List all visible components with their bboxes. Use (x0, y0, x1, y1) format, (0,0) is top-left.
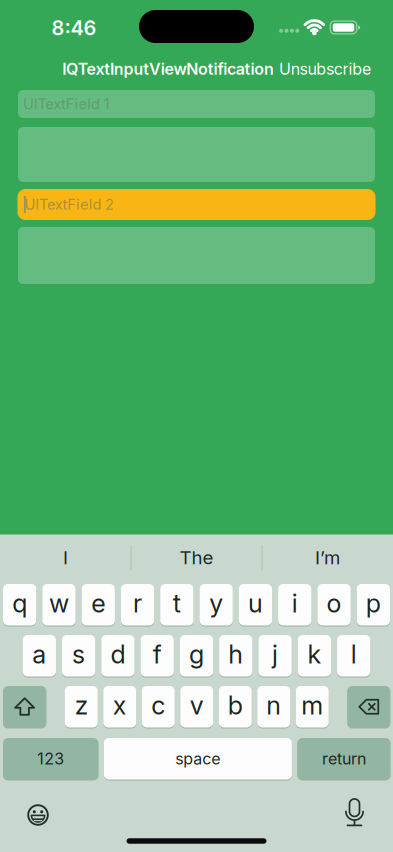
staticText: space (175, 749, 220, 768)
staticText: UITextField 1 (23, 95, 110, 113)
staticText: f (153, 639, 162, 669)
staticText: Unsubscribe (279, 60, 371, 78)
staticText: 123 (37, 749, 64, 768)
button[interactable]: n (257, 685, 290, 728)
button[interactable]: k (298, 634, 331, 677)
staticText: r (133, 588, 142, 618)
staticText: j (272, 639, 278, 669)
button[interactable]: 123 (3, 737, 98, 780)
button[interactable]: I’m (267, 537, 387, 577)
button[interactable]: p (357, 583, 390, 626)
button[interactable]: w (42, 583, 76, 626)
staticText: c (151, 690, 165, 720)
staticText: UITextField 2 (24, 196, 114, 213)
button[interactable]: g (180, 634, 213, 677)
button[interactable]: c (142, 685, 175, 728)
staticText: t (173, 588, 181, 618)
button[interactable]: Dictate (335, 794, 373, 832)
staticText: I’m (315, 546, 340, 568)
button[interactable]: v (180, 685, 213, 728)
button[interactable]: Delete (347, 685, 390, 728)
button[interactable]: UITextField 1 (18, 90, 375, 118)
button[interactable]: The (136, 537, 256, 577)
staticText: g (189, 639, 204, 669)
button[interactable]: q (3, 583, 36, 626)
button[interactable]: Emoji (19, 796, 57, 834)
staticText: IQTextInputViewNotification (62, 60, 274, 78)
staticText: z (75, 690, 88, 720)
staticText: k (307, 639, 321, 669)
button[interactable]: o (317, 583, 351, 626)
staticText: l (351, 639, 357, 669)
staticText: d (110, 639, 125, 669)
staticText: u (248, 588, 263, 618)
staticText: v (190, 690, 204, 720)
button[interactable]: s (62, 634, 95, 677)
staticText: n (266, 690, 281, 720)
button[interactable]: z (65, 685, 98, 728)
staticText: m (301, 690, 323, 720)
button[interactable]: e (82, 583, 115, 626)
button[interactable]: r (121, 583, 154, 626)
button[interactable]: u (239, 583, 272, 626)
staticText: x (113, 690, 127, 720)
button[interactable]: return (297, 737, 390, 780)
staticText: p (366, 588, 381, 618)
button[interactable]: i (278, 583, 311, 626)
button[interactable]: x (103, 685, 136, 728)
button[interactable]: a (23, 634, 56, 677)
staticText: e (91, 588, 105, 618)
button[interactable]: UITextField 2 (17, 189, 375, 220)
button[interactable]: t (160, 583, 193, 626)
staticText: I (63, 546, 68, 568)
staticText: a (32, 639, 46, 669)
staticText: i (292, 588, 298, 618)
staticText: b (228, 690, 243, 720)
button[interactable]: h (219, 634, 252, 677)
staticText: y (209, 588, 223, 618)
button[interactable]: f (140, 634, 174, 677)
staticText: q (12, 588, 27, 618)
button[interactable]: l (337, 634, 370, 677)
button[interactable]: Shift (3, 685, 46, 728)
staticText: return (322, 749, 366, 768)
staticText: o (326, 588, 341, 618)
button[interactable]: Unsubscribe (279, 60, 371, 78)
button[interactable]: j (258, 634, 292, 677)
button[interactable]: b (219, 685, 252, 728)
button[interactable]: d (101, 634, 134, 677)
staticText: The (179, 546, 213, 568)
staticText: 8:46 (51, 16, 96, 40)
button[interactable]: I (5, 537, 125, 577)
button[interactable]: m (296, 685, 329, 728)
staticText: s (72, 639, 85, 669)
staticText: w (49, 588, 69, 618)
staticText: h (228, 639, 243, 669)
button[interactable]: space (104, 737, 292, 780)
button[interactable]: y (199, 583, 233, 626)
